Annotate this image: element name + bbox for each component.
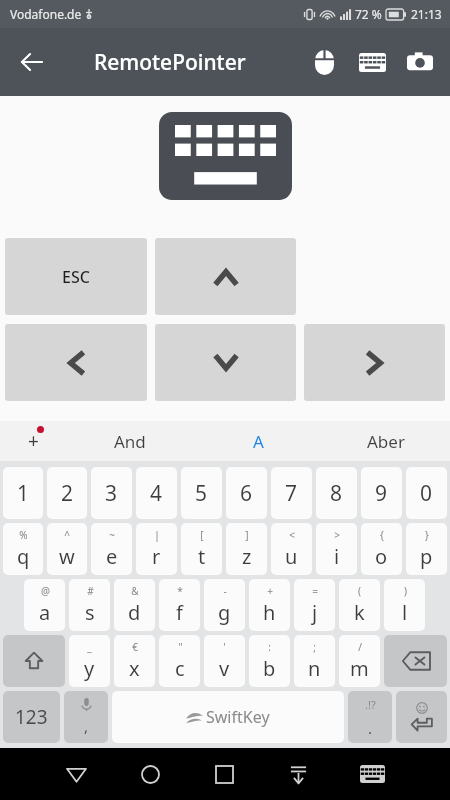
button[interactable]: 0: [406, 467, 447, 519]
button[interactable]: Shift: [3, 635, 65, 687]
button[interactable]: <: [271, 523, 312, 575]
button[interactable]: #: [69, 579, 110, 631]
button[interactable]: And: [66, 421, 194, 461]
staticText: /: [358, 640, 362, 654]
button[interactable]: Punctuation: [348, 691, 392, 743]
staticText: <: [289, 528, 295, 542]
staticText: 0: [420, 479, 433, 508]
staticText: o: [375, 543, 388, 570]
button[interactable]: Right: [304, 324, 445, 401]
button[interactable]: ': [204, 635, 245, 687]
button[interactable]: *: [159, 579, 200, 631]
button[interactable]: @: [24, 579, 65, 631]
button[interactable]: Left: [5, 324, 147, 401]
button[interactable]: =: [294, 579, 335, 631]
staticText: _: [87, 640, 92, 654]
staticText: ;: [313, 640, 316, 654]
staticText: ^: [64, 528, 70, 542]
button[interactable]: ): [384, 579, 425, 631]
button[interactable]: _: [69, 635, 110, 687]
button[interactable]: +: [249, 579, 290, 631]
button[interactable]: 6: [226, 467, 267, 519]
staticText: [: [200, 528, 204, 542]
button[interactable]: %: [3, 523, 43, 575]
button[interactable]: |: [136, 523, 177, 575]
button[interactable]: Home: [113, 748, 187, 800]
button[interactable]: Keyboard mode: [348, 38, 396, 86]
button[interactable]: }: [406, 523, 447, 575]
button[interactable]: ~: [91, 523, 132, 575]
staticText: And: [114, 430, 146, 453]
button[interactable]: -: [204, 579, 245, 631]
button[interactable]: A: [194, 421, 322, 461]
staticText: ": [178, 640, 183, 654]
button[interactable]: Add: [0, 421, 66, 461]
staticText: w: [59, 543, 75, 570]
staticText: 7: [285, 479, 298, 508]
button[interactable]: /: [339, 635, 380, 687]
button[interactable]: Backspace: [384, 635, 447, 687]
staticText: +: [28, 428, 39, 454]
button[interactable]: Voice input: [64, 691, 108, 743]
button[interactable]: 123: [3, 691, 60, 743]
button[interactable]: >: [316, 523, 357, 575]
staticText: 2: [61, 479, 74, 508]
staticText: ': [223, 640, 226, 654]
staticText: k: [354, 599, 365, 626]
button[interactable]: Space: [112, 691, 344, 743]
staticText: :: [268, 640, 271, 654]
button[interactable]: 4: [136, 467, 177, 519]
button[interactable]: ^: [47, 523, 87, 575]
button[interactable]: Back: [8, 38, 56, 86]
button[interactable]: ;: [294, 635, 335, 687]
button[interactable]: 8: [316, 467, 357, 519]
staticText: 9: [375, 479, 388, 508]
button[interactable]: Up: [155, 238, 296, 315]
button[interactable]: 2: [47, 467, 87, 519]
button[interactable]: Back: [40, 748, 113, 800]
staticText: r: [152, 543, 161, 570]
button[interactable]: [: [181, 523, 222, 575]
button[interactable]: €: [114, 635, 155, 687]
button[interactable]: 7: [271, 467, 312, 519]
button[interactable]: 3: [91, 467, 132, 519]
staticText: }: [425, 528, 429, 542]
button[interactable]: 9: [361, 467, 402, 519]
staticText: 5: [195, 479, 208, 508]
staticText: e: [106, 543, 118, 570]
button[interactable]: ESC: [5, 238, 147, 315]
button[interactable]: Camera: [396, 38, 444, 86]
staticText: Aber: [367, 430, 405, 453]
button[interactable]: Enter: [396, 691, 447, 743]
button[interactable]: Mouse mode: [300, 38, 348, 86]
button[interactable]: ]: [226, 523, 267, 575]
staticText: 4: [150, 479, 163, 508]
button[interactable]: Aber: [322, 421, 450, 461]
staticText: 6: [240, 479, 253, 508]
button[interactable]: Recents: [187, 748, 261, 800]
staticText: .: [368, 718, 373, 738]
staticText: &: [131, 584, 139, 598]
staticText: v: [219, 655, 230, 682]
staticText: €: [132, 640, 138, 654]
staticText: =: [312, 584, 318, 598]
button[interactable]: (: [339, 579, 380, 631]
button[interactable]: 1: [3, 467, 43, 519]
button[interactable]: 5: [181, 467, 222, 519]
button[interactable]: :: [249, 635, 290, 687]
staticText: #: [87, 584, 94, 598]
button[interactable]: {: [361, 523, 402, 575]
staticText: c: [175, 655, 185, 682]
button[interactable]: ": [159, 635, 200, 687]
staticText: A: [253, 430, 264, 453]
staticText: i: [334, 543, 340, 570]
button[interactable]: Hide keyboard: [261, 748, 335, 800]
staticText: |: [154, 528, 160, 542]
staticText: h: [263, 599, 276, 626]
button[interactable]: Down: [155, 324, 296, 401]
button[interactable]: Switch keyboard: [335, 748, 409, 800]
staticText: ,: [84, 716, 89, 736]
staticText: (: [358, 584, 361, 598]
button[interactable]: Show keyboard: [159, 112, 292, 200]
button[interactable]: &: [114, 579, 155, 631]
